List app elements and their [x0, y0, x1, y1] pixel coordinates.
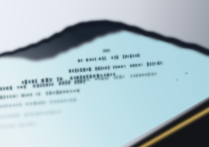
button[interactable]: Close-up photo of a phone displaying a n…: [0, 0, 209, 147]
